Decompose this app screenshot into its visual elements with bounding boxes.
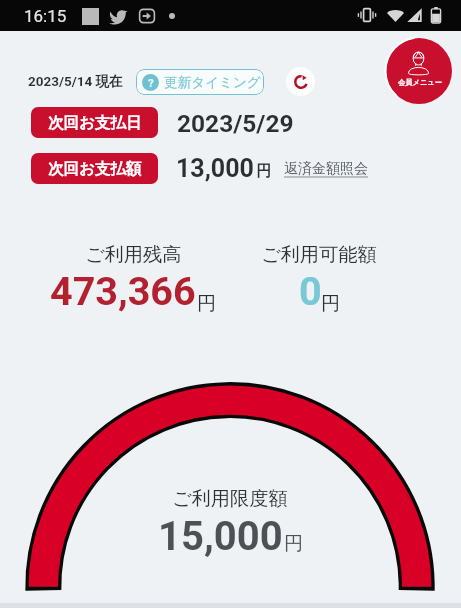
button[interactable]: ? — [136, 69, 264, 95]
button[interactable]: 返済金額照会 — [284, 159, 368, 177]
staticText: 円 — [256, 162, 271, 181]
staticText: ? — [148, 76, 154, 89]
staticText: 13,000 — [176, 154, 254, 183]
staticText: 2023/5/14 現在 — [28, 73, 123, 90]
staticText: 15,000 — [158, 513, 283, 560]
staticText: ご利用可能額 — [261, 243, 377, 267]
staticText: 16:15 — [24, 6, 67, 26]
button[interactable]: Refresh — [286, 67, 315, 96]
staticText: 0 — [299, 268, 322, 314]
staticText: 会員メニュー — [398, 78, 442, 87]
staticText: 次回お支払日 — [48, 113, 142, 133]
staticText: 円 — [321, 292, 340, 316]
staticText: 次回お支払額 — [48, 159, 142, 179]
staticText: 更新タイミング — [164, 74, 261, 91]
staticText: 2023/5/29 — [177, 109, 294, 138]
staticText: ご利用残高 — [85, 243, 182, 267]
button[interactable]: 次回お支払日 — [31, 107, 158, 138]
staticText: ご利用限度額 — [172, 487, 288, 511]
button[interactable]: 次回お支払額 — [31, 153, 158, 184]
staticText: 円 — [197, 292, 216, 316]
staticText: 円 — [284, 532, 303, 556]
button[interactable]: 会員メニュー — [386, 38, 452, 104]
staticText: 473,366 — [50, 268, 196, 314]
